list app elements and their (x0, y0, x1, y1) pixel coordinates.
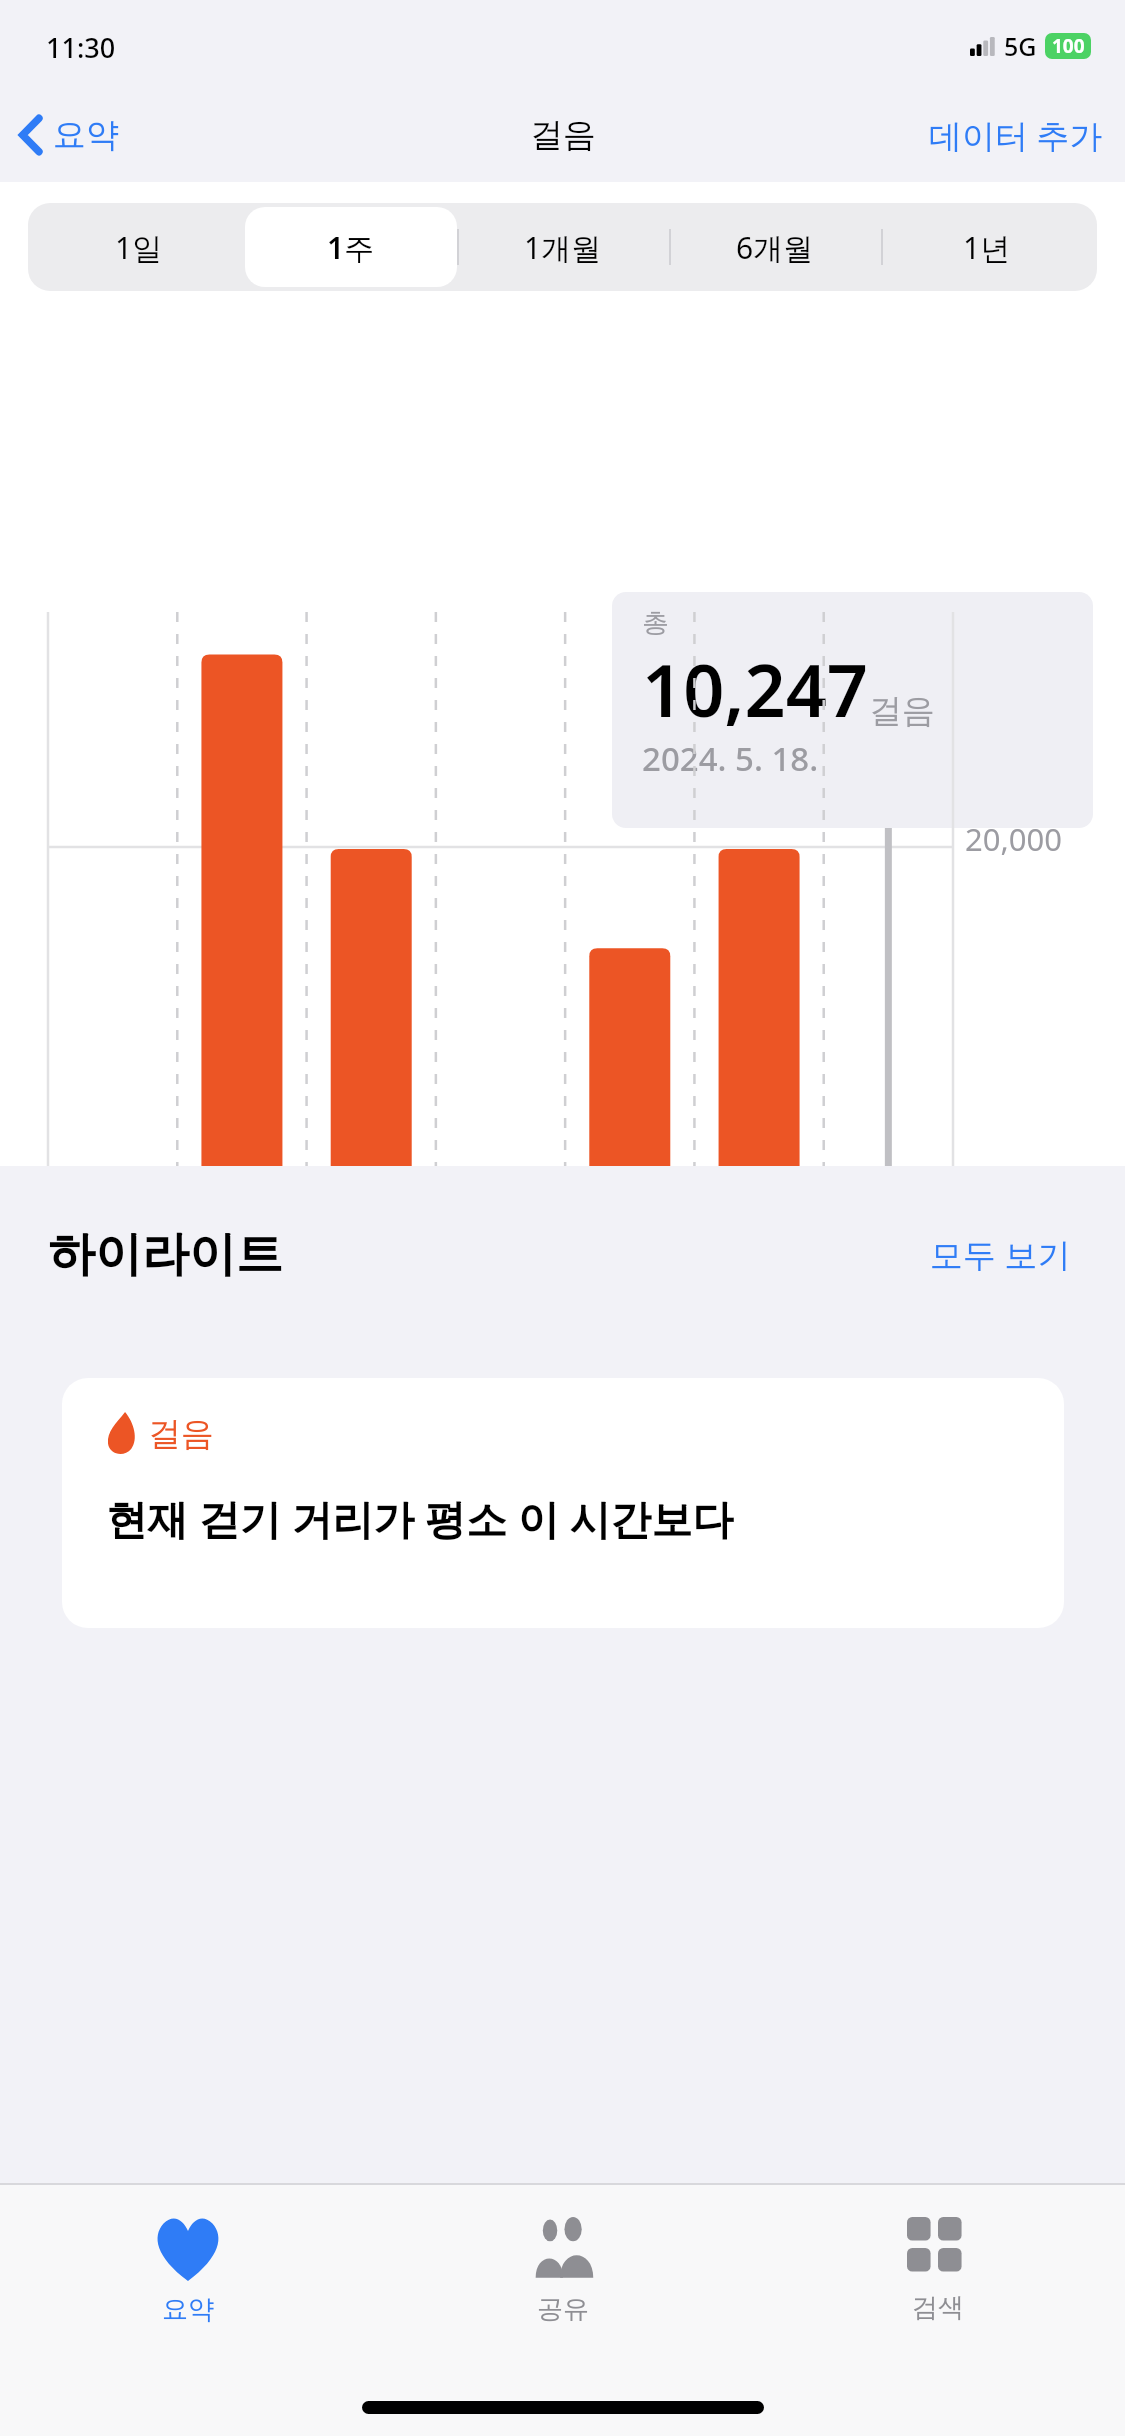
button[interactable]: 공유 (375, 2209, 750, 2334)
button[interactable]: 걸음 아이콘 (62, 1378, 1064, 1628)
staticText: 걸음 (148, 1413, 214, 1455)
staticText: 1일 (115, 227, 163, 268)
staticText: 2024. 5. 18. (642, 736, 819, 781)
staticText: 6개월 (736, 227, 814, 268)
button[interactable]: 모두 보기 (924, 1226, 1077, 1283)
staticText: 걸음 (869, 690, 935, 732)
staticText: 총 (642, 606, 669, 640)
staticText: 20,000 (965, 818, 1062, 860)
staticText: 0 (965, 1596, 983, 1638)
staticText: 1개월 (524, 227, 602, 268)
staticText: 걸음 (530, 114, 596, 156)
staticText: 10,000 (965, 1207, 1062, 1249)
button[interactable]: 6개월 (669, 207, 881, 287)
staticText: 현재 걷기 거리가 평소 이 시간보다 (106, 1490, 734, 1546)
other: 걸음 아이콘 (106, 1412, 140, 1456)
button[interactable]: 데이터 추가 (907, 105, 1125, 166)
button[interactable]: 1년 (881, 207, 1093, 287)
staticText: 1년 (963, 227, 1011, 268)
staticText: 검색 (912, 2291, 964, 2324)
staticText: 100 (1052, 33, 1085, 59)
staticText: 11:30 (46, 29, 116, 66)
staticText: 1주 (327, 227, 375, 268)
staticText: 요약 (53, 114, 119, 156)
button[interactable]: 요약 (0, 2209, 375, 2334)
button[interactable]: 검색 (750, 2209, 1125, 2332)
staticText: 5G (1004, 29, 1037, 63)
staticText: 공유 (537, 2293, 589, 2326)
button[interactable]: 1개월 (457, 207, 669, 287)
staticText: 10,247 (642, 640, 869, 738)
button[interactable]: 1주 (245, 207, 457, 287)
button[interactable]: 1일 (32, 207, 245, 287)
staticText: 하이라이트 (48, 1225, 283, 1284)
staticText: 요약 (162, 2293, 214, 2326)
button[interactable]: 요약 (0, 108, 131, 162)
